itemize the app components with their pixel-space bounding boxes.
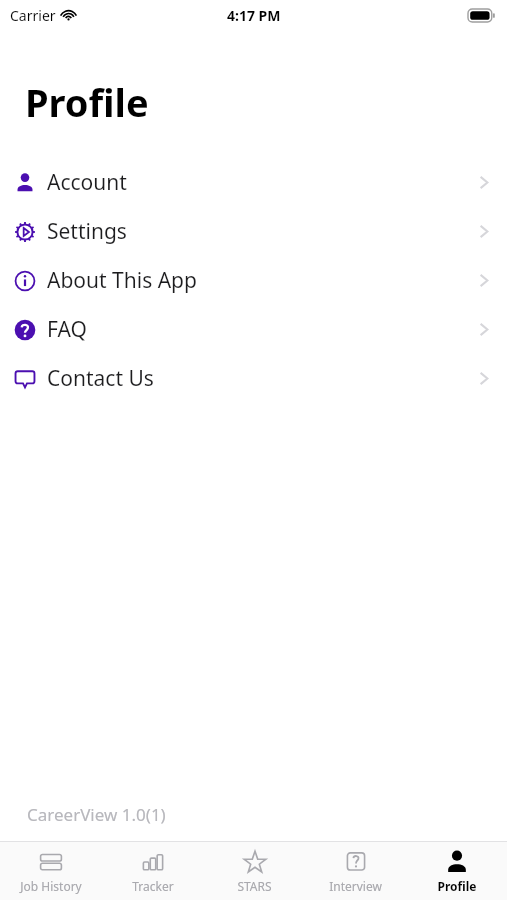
staticText: 4:17 PM	[227, 6, 281, 25]
button[interactable]: Interview	[305, 842, 406, 900]
button[interactable]: About This App	[0, 256, 507, 305]
button[interactable]: Contact Us	[0, 354, 507, 403]
staticText: STARS	[237, 878, 272, 894]
button[interactable]: Tracker	[102, 842, 204, 900]
button[interactable]: Profile	[406, 842, 507, 900]
button[interactable]: STARS	[204, 842, 305, 900]
staticText: Account	[47, 168, 127, 197]
staticText: FAQ	[47, 315, 87, 344]
staticText: Profile	[437, 878, 477, 894]
staticText: Profile	[25, 76, 149, 128]
staticText: Tracker	[132, 878, 174, 894]
staticText: About This App	[47, 266, 197, 295]
button[interactable]: Settings	[0, 207, 507, 256]
staticText: CareerView 1.0(1)	[27, 803, 166, 826]
button[interactable]: Account	[0, 158, 507, 207]
button[interactable]: Job History	[0, 842, 102, 900]
staticText: Settings	[47, 217, 127, 246]
staticText: Contact Us	[47, 364, 154, 393]
staticText: Carrier	[10, 6, 56, 25]
button[interactable]: FAQ	[0, 305, 507, 354]
staticText: Interview	[329, 878, 382, 894]
staticText: Job History	[20, 878, 82, 894]
